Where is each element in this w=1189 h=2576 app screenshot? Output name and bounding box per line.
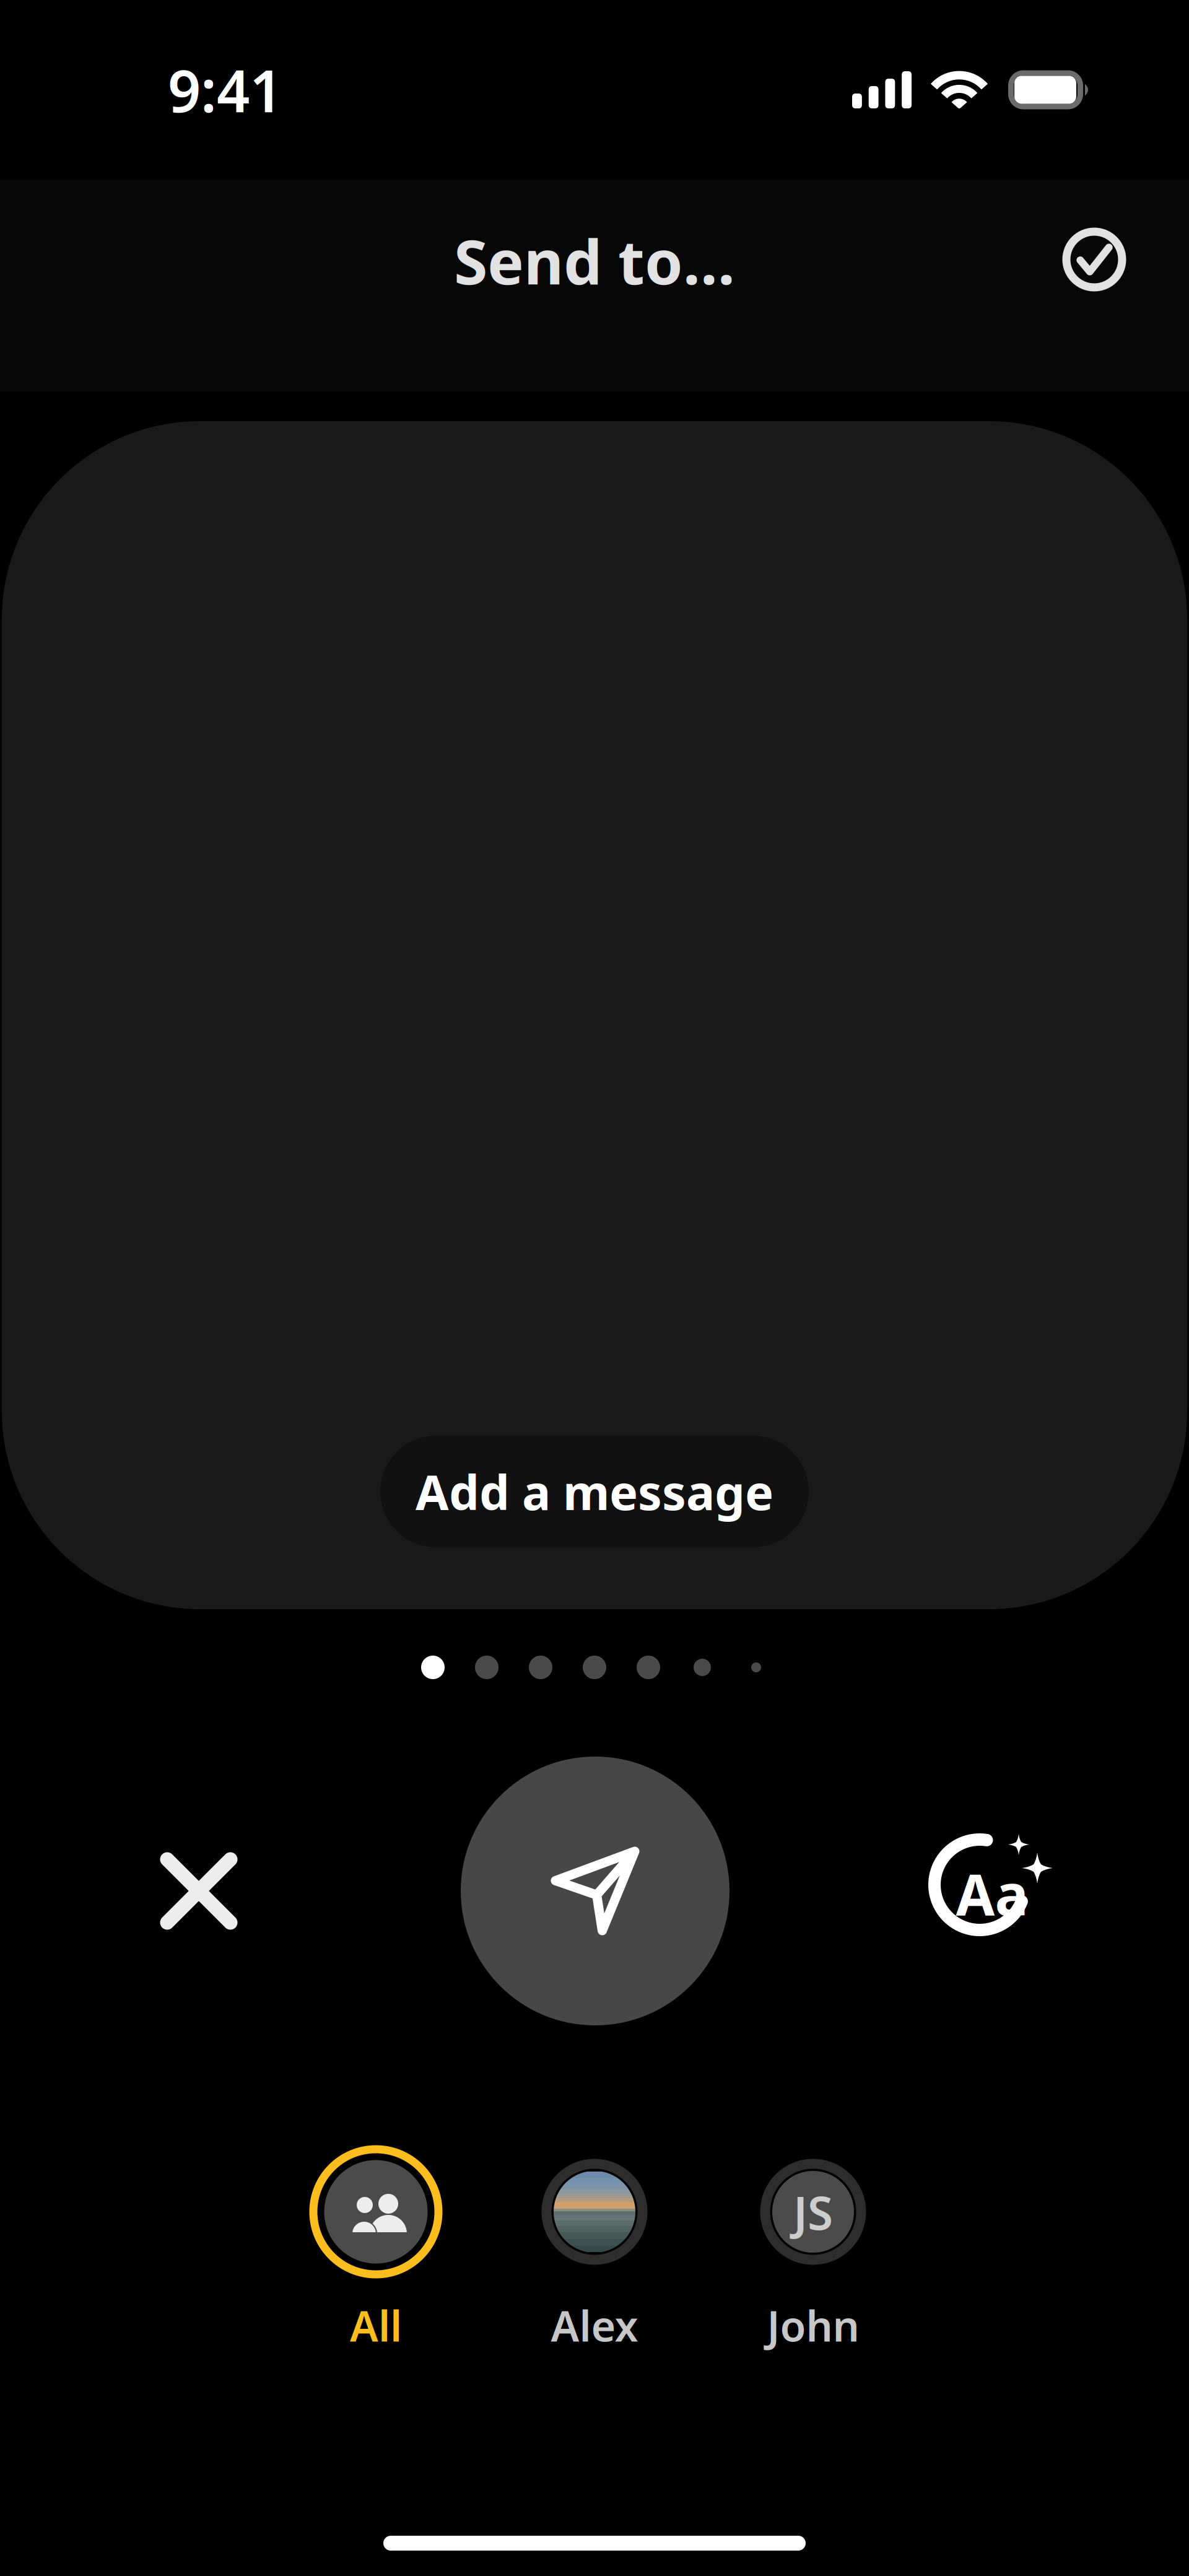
staticText: Aa: [956, 1856, 1028, 1931]
staticText: Add a message: [416, 1460, 773, 1523]
button[interactable]: Confirm: [1045, 210, 1144, 309]
button[interactable]: Add caption: [917, 1817, 1066, 1965]
button[interactable]: Alex: [502, 2145, 687, 2353]
staticText: Alex: [551, 2297, 638, 2353]
button[interactable]: Send: [461, 1757, 730, 2025]
staticText: Send to...: [454, 220, 735, 301]
staticText: 9:41: [168, 51, 282, 128]
button[interactable]: Add a message: [380, 1436, 809, 1547]
staticText: JS: [793, 2181, 833, 2243]
button[interactable]: Close: [124, 1817, 273, 1965]
staticText: John: [767, 2297, 859, 2353]
staticText: All: [350, 2297, 402, 2353]
button[interactable]: All: [283, 2145, 469, 2353]
button[interactable]: JS: [720, 2145, 906, 2353]
